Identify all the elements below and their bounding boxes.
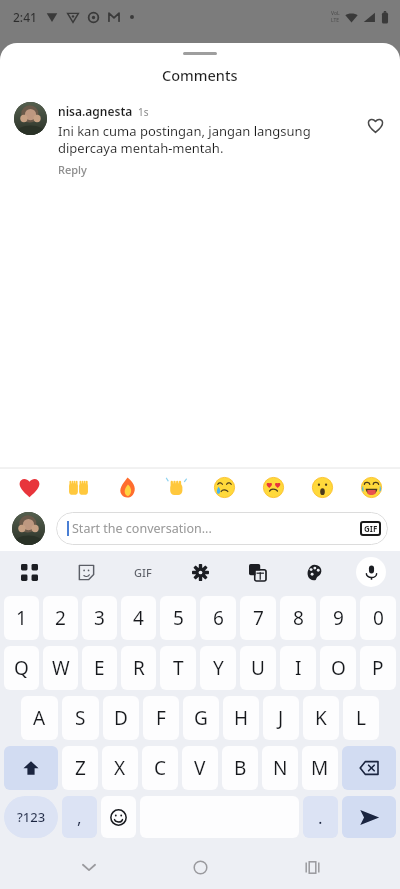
button[interactable]: React cry [209,472,239,502]
button[interactable]: Y [200,646,236,690]
button[interactable]: React love [258,472,288,502]
button[interactable]: A [21,696,58,740]
button[interactable]: C [142,746,178,790]
button[interactable]: N [262,746,298,790]
staticText: VoL [331,10,340,17]
button[interactable]: React wow [307,472,337,502]
button[interactable]: Back [66,845,112,889]
staticText: J [278,705,284,731]
button[interactable]: Themes [299,557,329,587]
button[interactable]: Q [4,646,39,690]
button[interactable]: Z [62,746,98,790]
button[interactable]: J [263,696,299,740]
staticText: Z [75,755,86,781]
staticText: 2 [55,605,66,631]
button[interactable]: Start the conversation... [56,512,388,545]
staticText: M [311,755,329,781]
button[interactable]: 0 [360,596,396,640]
staticText: GIF [134,565,152,580]
button[interactable]: D [103,696,139,740]
staticText: F [156,705,166,731]
staticText: Comments [162,65,238,85]
button[interactable]: Like comment [362,112,388,138]
button[interactable]: O [320,646,356,690]
staticText: G [194,705,208,731]
staticText: A [33,705,46,731]
button[interactable]: Stickers [71,557,101,587]
button[interactable]: nisa.agnesta [0,93,400,177]
staticText: T [173,655,184,681]
button[interactable]: G [183,696,219,740]
staticText: . [318,806,323,829]
button[interactable]: React hands [63,472,93,502]
button[interactable]: React joy [356,472,386,502]
staticText: LTE [331,17,340,24]
button[interactable]: 4 [121,596,156,640]
button[interactable]: Send [342,796,396,838]
button[interactable]: Shift [4,746,58,790]
staticText: ?123 [17,808,46,826]
button[interactable]: 6 [200,596,236,640]
staticText: nisa.agnesta [58,103,133,119]
button[interactable]: X [102,746,138,790]
button[interactable]: Keyboard settings [185,557,215,587]
staticText: O [331,655,346,681]
button[interactable]: 8 [280,596,316,640]
staticText: 8 [293,605,304,631]
button[interactable]: Voice input [356,557,386,587]
staticText: 1 [16,605,27,631]
button[interactable]: GIF [128,557,158,587]
staticText: H [234,705,249,731]
button[interactable]: 2 [43,596,78,640]
button[interactable]: B [222,746,258,790]
staticText: W [52,655,70,681]
staticText: B [234,755,247,781]
button[interactable]: React clap [161,472,191,502]
button[interactable]: Translate [242,557,272,587]
staticText: L [356,705,366,731]
staticText: E [94,655,105,681]
staticText: Start the conversation... [72,520,212,537]
button[interactable]: K [303,696,339,740]
button[interactable]: Reply [58,162,87,177]
staticText: I [295,655,302,681]
button[interactable]: More tools [14,557,44,587]
button[interactable]: Emoji [101,796,136,838]
button[interactable]: R [121,646,156,690]
staticText: D [114,705,128,731]
button[interactable]: S [62,696,99,740]
staticText: R [133,655,145,681]
staticText: GIF [364,523,378,534]
button[interactable]: 1 [4,596,39,640]
button[interactable]: . [303,796,338,838]
button[interactable]: 3 [82,596,117,640]
button[interactable]: Backspace [342,746,396,790]
button[interactable]: E [82,646,117,690]
button[interactable]: F [143,696,179,740]
button[interactable]: React heart [14,472,44,502]
button[interactable]: W [43,646,78,690]
button[interactable]: T [160,646,196,690]
button[interactable]: P [360,646,396,690]
button[interactable]: 9 [320,596,356,640]
staticText: 5 [173,605,184,631]
button[interactable]: 5 [160,596,196,640]
button[interactable]: U [240,646,276,690]
button[interactable]: I [280,646,316,690]
staticText: X [114,755,126,781]
button[interactable]: React fire [112,472,142,502]
button[interactable]: 7 [240,596,276,640]
button[interactable]: Home [177,845,223,889]
staticText: , [77,806,82,829]
button[interactable]: V [182,746,218,790]
button[interactable]: , [62,796,97,838]
button[interactable]: H [223,696,259,740]
button[interactable]: M [302,746,338,790]
button[interactable]: GIF [360,521,381,536]
button[interactable]: L [343,696,379,740]
button[interactable]: ?123 [4,796,58,838]
staticText: 4 [133,605,144,631]
staticText: 6 [213,605,224,631]
button[interactable]: Recent apps [289,845,335,889]
